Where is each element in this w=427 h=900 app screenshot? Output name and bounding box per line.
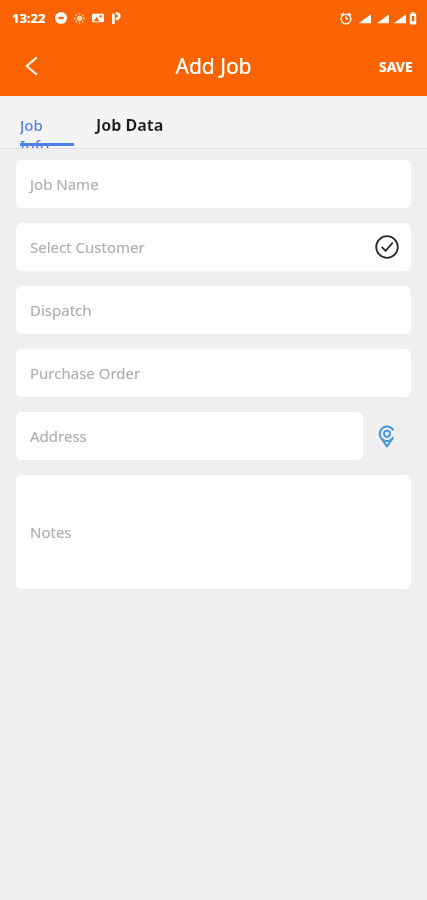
button[interactable]: Job Name [16, 160, 411, 208]
staticText: Notes [30, 522, 72, 542]
staticText: Select Customer [30, 237, 145, 257]
staticText: Address [30, 426, 87, 446]
staticText: Purchase Order [30, 363, 141, 383]
button[interactable]: Job Data [74, 96, 184, 149]
staticText: Add Job [175, 52, 252, 81]
button[interactable]: Dispatch [16, 286, 411, 334]
staticText: Job Name [30, 174, 99, 194]
button[interactable]: Select Customer [16, 223, 411, 271]
button[interactable]: SAVE [365, 36, 427, 96]
staticText: Dispatch [30, 300, 92, 320]
button[interactable]: Back [6, 40, 58, 92]
staticText: 13:22 [12, 9, 46, 27]
staticText: Job Data [96, 114, 164, 136]
button[interactable]: Address [16, 412, 363, 460]
button[interactable]: Pick location on map [363, 412, 411, 460]
button[interactable]: Job Info [0, 96, 74, 149]
staticText: Job Info [20, 115, 74, 149]
button[interactable]: Purchase Order [16, 349, 411, 397]
button[interactable]: Notes [16, 475, 411, 589]
staticText: SAVE [379, 57, 413, 76]
